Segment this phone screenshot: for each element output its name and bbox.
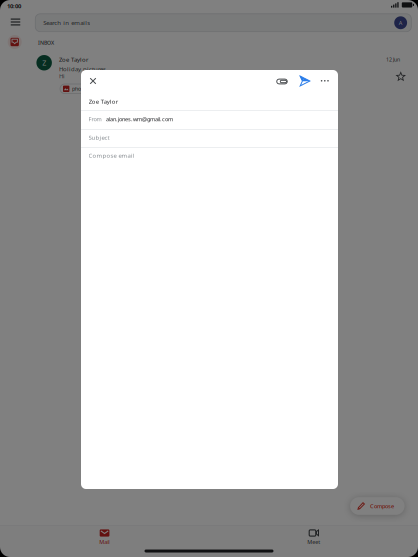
- staticText: Holiday pictures: [59, 65, 106, 73]
- button[interactable]: Mail: [0, 525, 209, 557]
- button[interactable]: Open navigation drawer: [4, 11, 26, 32]
- staticText: 10:00: [7, 2, 21, 10]
- staticText: photo.jpg: [72, 85, 94, 92]
- staticText: Zoe Taylor: [59, 55, 88, 64]
- staticText: 12 Jun: [386, 56, 400, 63]
- staticText: Subject: [88, 133, 109, 142]
- button[interactable]: Send: [296, 72, 314, 90]
- button[interactable]: More options: [316, 72, 334, 90]
- staticText: Hi: [59, 72, 65, 80]
- button[interactable]: Attach file: [273, 72, 291, 90]
- staticText: Mail: [99, 538, 109, 545]
- button[interactable]: Search in emails: [35, 14, 411, 32]
- staticText: Compose: [370, 502, 394, 510]
- staticText: From: [88, 115, 101, 123]
- button[interactable]: Close: [84, 72, 102, 90]
- staticText: Z: [42, 58, 46, 68]
- button[interactable]: Meet: [209, 525, 418, 557]
- staticText: Zoe Taylor: [89, 97, 118, 105]
- button[interactable]: Compose: [350, 497, 405, 515]
- staticText: A: [399, 19, 403, 26]
- staticText: Meet: [307, 538, 320, 545]
- staticText: INBOX: [38, 39, 54, 46]
- staticText: Search in emails: [43, 19, 90, 27]
- staticText: alan.jones.wm@gmail.com: [106, 115, 173, 123]
- staticText: Compose email: [88, 151, 134, 160]
